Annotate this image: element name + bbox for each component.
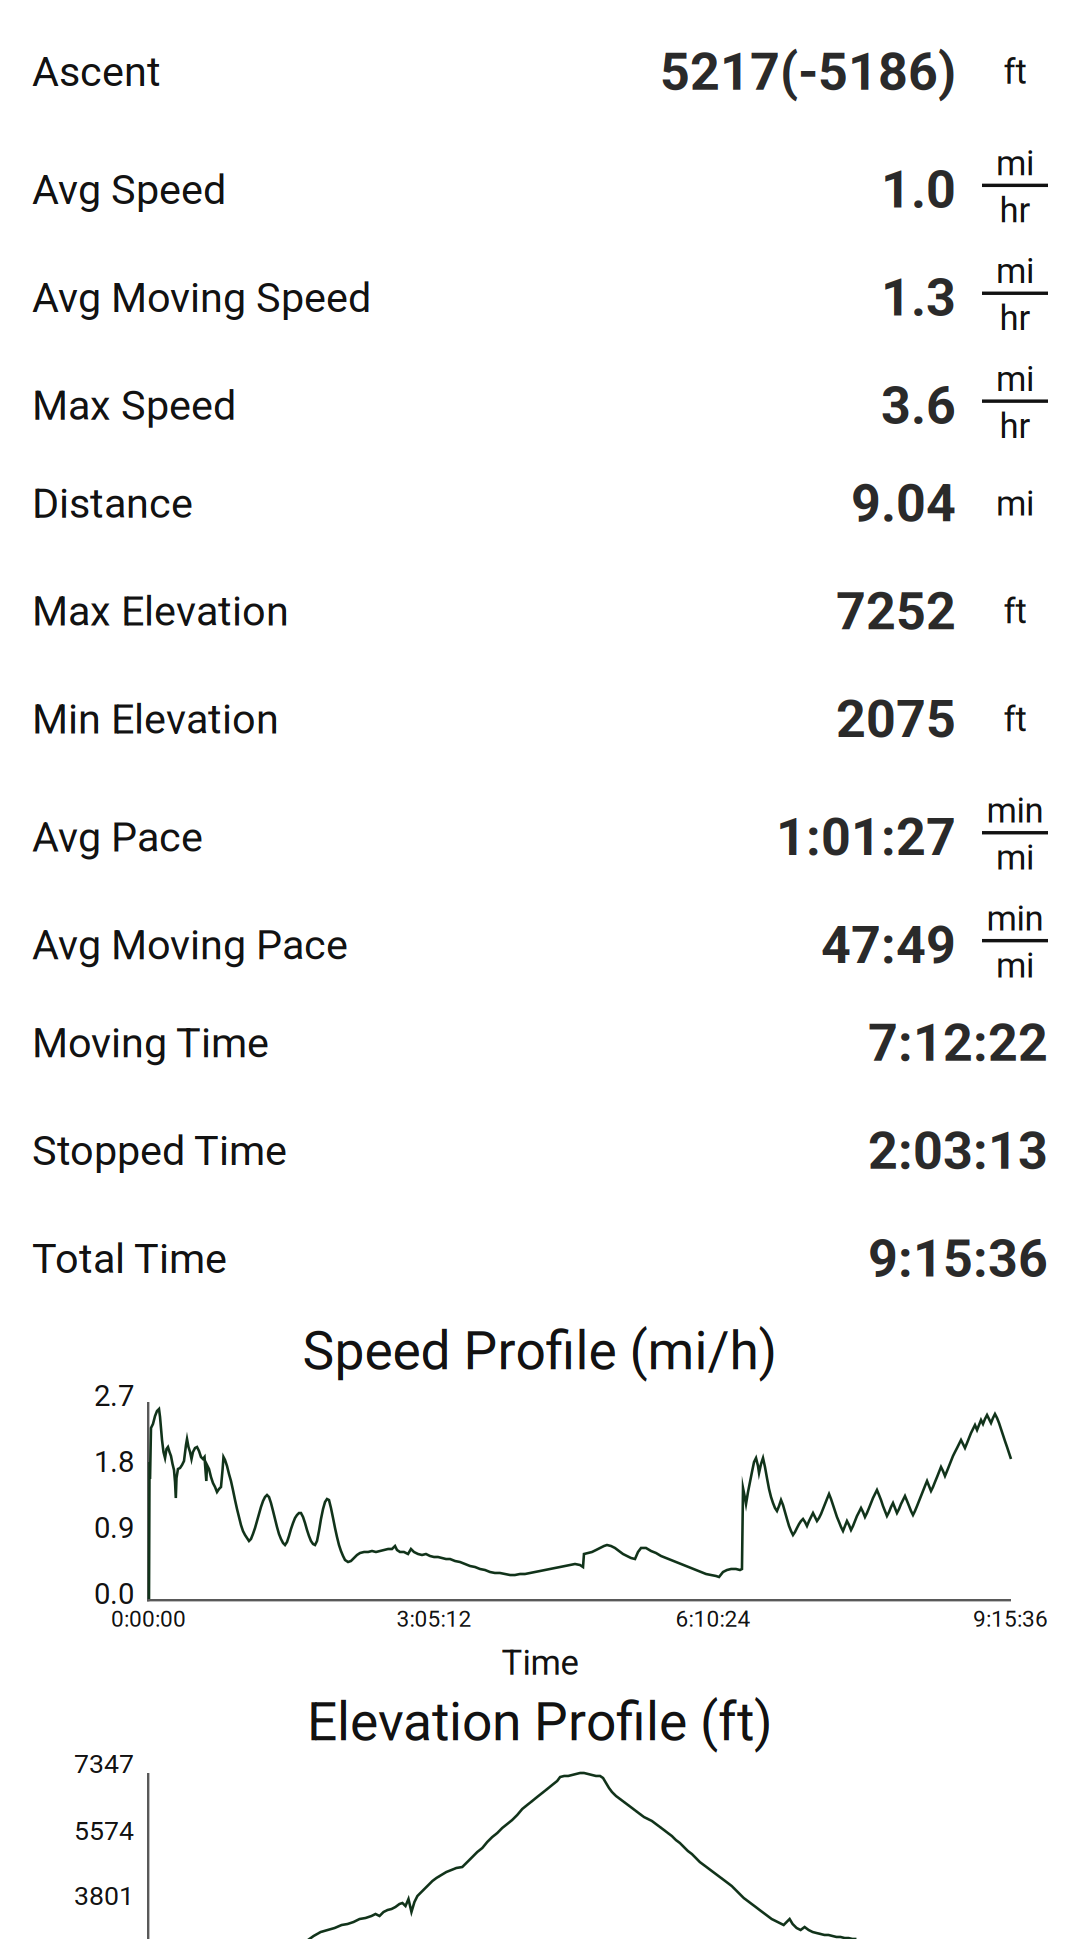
button[interactable]: Ascent	[0, 18, 1080, 126]
staticText: mi	[996, 483, 1034, 524]
staticText: ft	[1003, 52, 1026, 92]
staticText: Avg Speed	[32, 166, 226, 214]
staticText: min	[986, 898, 1043, 939]
staticText: 2:03:13	[868, 1120, 1048, 1181]
staticText: 6:10:24	[675, 1606, 750, 1632]
button[interactable]: Distance	[0, 450, 1080, 557]
staticText: Time	[501, 1643, 578, 1683]
button[interactable]: Max Speed	[0, 342, 1080, 450]
staticText: 5217(-5186)	[660, 41, 956, 102]
staticText: 1.0	[881, 159, 956, 220]
staticText: 7347	[74, 1748, 134, 1780]
staticText: 5574	[74, 1815, 134, 1847]
staticText: Distance	[32, 479, 193, 528]
staticText: 1.8	[94, 1445, 134, 1479]
button[interactable]: Avg Moving Pace	[0, 881, 1080, 989]
staticText: 0:00:00	[111, 1606, 186, 1632]
staticText: mi	[996, 837, 1034, 878]
staticText: min	[986, 790, 1043, 831]
staticText: Ascent	[32, 48, 161, 96]
staticText: Min Elevation	[32, 695, 279, 743]
button[interactable]: Avg Pace	[0, 773, 1080, 881]
staticText: 0.0	[94, 1577, 134, 1611]
staticText: Avg Moving Pace	[32, 921, 348, 969]
staticText: Stopped Time	[32, 1127, 287, 1175]
button[interactable]: Avg Moving Speed	[0, 234, 1080, 342]
staticText: mi	[996, 945, 1034, 986]
staticText: 7:12:22	[868, 1013, 1048, 1073]
staticText: 0.9	[94, 1511, 134, 1545]
staticText: hr	[999, 406, 1030, 446]
staticText: hr	[999, 298, 1030, 338]
staticText: Max Elevation	[32, 587, 289, 636]
staticText: Total Time	[32, 1235, 227, 1283]
staticText: Speed Profile (mi/h)	[302, 1320, 777, 1382]
button[interactable]: Min Elevation	[0, 665, 1080, 773]
staticText: Elevation Profile (ft)	[307, 1691, 773, 1753]
staticText: 3801	[74, 1880, 134, 1912]
staticText: 7252	[836, 581, 956, 642]
staticText: hr	[999, 190, 1030, 231]
staticText: 2.7	[94, 1379, 134, 1413]
button[interactable]: Max Elevation	[0, 557, 1080, 665]
staticText: 47:49	[821, 915, 956, 976]
staticText: 1:01:27	[776, 807, 956, 868]
staticText: ft	[1003, 699, 1026, 740]
staticText: mi	[996, 143, 1034, 184]
staticText: 9.04	[851, 473, 956, 534]
staticText: Avg Moving Speed	[32, 273, 371, 322]
staticText: 3.6	[881, 375, 956, 436]
staticText: Max Speed	[32, 381, 236, 430]
button[interactable]: Moving Time	[0, 989, 1080, 1097]
staticText: ft	[1003, 591, 1026, 632]
staticText: mi	[996, 251, 1034, 291]
staticText: 9:15:36	[973, 1606, 1048, 1632]
staticText: 9:15:36	[868, 1228, 1048, 1289]
staticText: 2075	[836, 689, 956, 750]
staticText: 3:05:12	[396, 1606, 471, 1632]
staticText: 1.3	[881, 267, 956, 328]
staticText: Moving Time	[32, 1019, 269, 1067]
staticText: mi	[996, 359, 1034, 399]
button[interactable]: Stopped Time	[0, 1097, 1080, 1205]
button[interactable]: Avg Speed	[0, 126, 1080, 234]
button[interactable]: Total Time	[0, 1205, 1080, 1313]
staticText: Avg Pace	[32, 813, 203, 861]
